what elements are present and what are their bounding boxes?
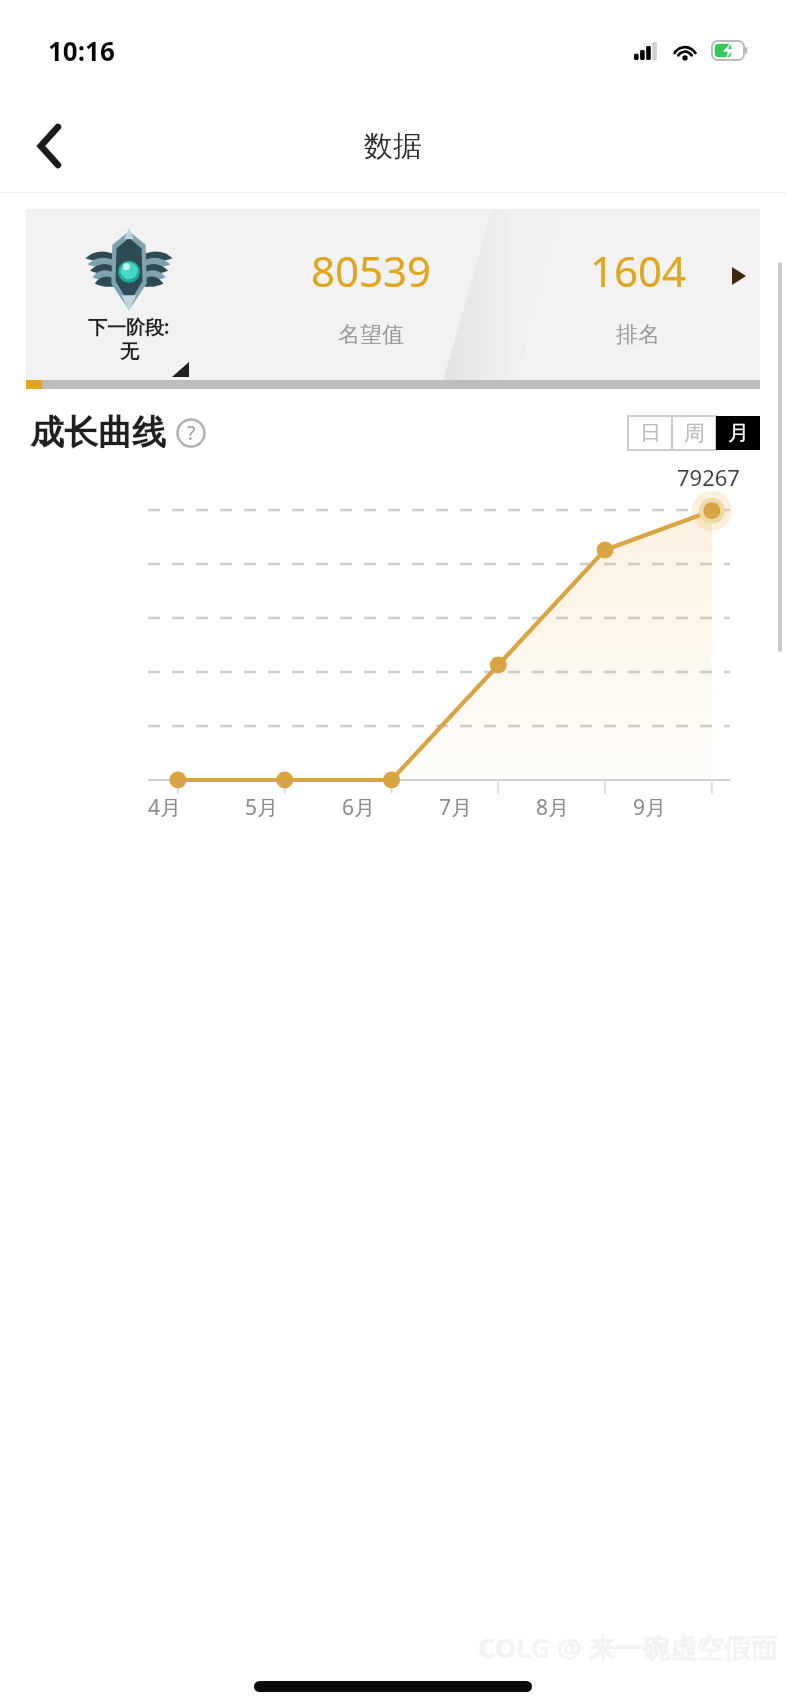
staticText: 成长曲线 bbox=[30, 411, 166, 454]
staticText: COLG @ 来一碗虚空假面 bbox=[478, 1629, 778, 1666]
staticText: 7月 bbox=[439, 793, 473, 822]
button[interactable]: 帮助 bbox=[176, 418, 206, 448]
staticText: 6月 bbox=[342, 793, 376, 822]
staticText: 周 bbox=[684, 420, 705, 446]
button[interactable]: 月 bbox=[716, 416, 760, 450]
staticText: 下一阶段: bbox=[88, 314, 170, 340]
button[interactable]: 周 bbox=[672, 416, 716, 450]
staticText: 名望值 bbox=[338, 321, 404, 349]
staticText: 无 bbox=[120, 340, 139, 364]
staticText: 排名 bbox=[616, 321, 660, 349]
staticText: 数据 bbox=[364, 128, 422, 165]
staticText: 5月 bbox=[245, 793, 279, 822]
button[interactable]: 日 bbox=[628, 416, 672, 450]
staticText: 9月 bbox=[633, 793, 667, 822]
staticText: 79267 bbox=[677, 462, 740, 492]
button[interactable]: Back bbox=[22, 118, 78, 174]
staticText: 8月 bbox=[536, 793, 570, 822]
staticText: 月 bbox=[728, 420, 749, 446]
staticText: 4月 bbox=[148, 793, 182, 822]
staticText: 日 bbox=[640, 420, 661, 446]
staticText: ? bbox=[187, 420, 196, 446]
button[interactable]: 下一阶段: bbox=[26, 209, 760, 389]
staticText: 10:16 bbox=[48, 33, 115, 68]
staticText: 80539 bbox=[311, 242, 432, 299]
staticText: 1604 bbox=[590, 242, 687, 299]
